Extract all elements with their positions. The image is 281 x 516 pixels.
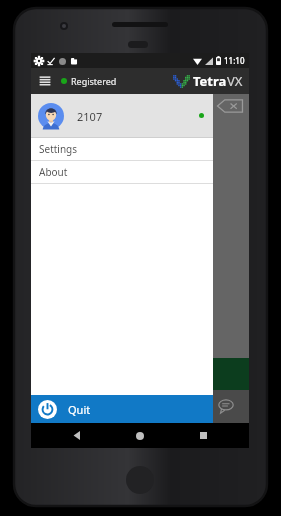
staticText: VX [227, 72, 243, 90]
button[interactable]: 2107 [31, 94, 213, 137]
button[interactable]: Back [60, 423, 94, 448]
staticText: Tetra [193, 72, 227, 90]
button[interactable]: About [31, 161, 213, 183]
staticText: About [39, 165, 68, 179]
staticText: Settings [39, 142, 78, 156]
staticText: Registered [71, 75, 117, 87]
button[interactable]: Settings [31, 138, 213, 160]
staticText: 11:10 [224, 55, 245, 66]
button[interactable]: Home [123, 423, 157, 448]
button[interactable]: Recent apps [186, 423, 220, 448]
staticText: Quit [68, 402, 91, 417]
button[interactable]: Open navigation menu [37, 73, 53, 89]
button[interactable]: Quit [31, 395, 213, 423]
staticText: 2107 [77, 109, 103, 124]
